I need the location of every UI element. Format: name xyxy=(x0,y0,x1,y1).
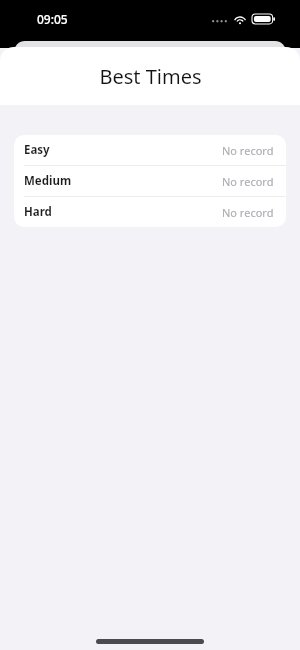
other: Battery xyxy=(252,13,276,25)
staticText: Medium xyxy=(24,173,72,189)
button[interactable]: Easy xyxy=(14,135,286,165)
staticText: Easy xyxy=(24,142,50,158)
other: Cellular signal xyxy=(212,14,227,25)
staticText: No record xyxy=(222,174,274,189)
staticText: 09:05 xyxy=(37,11,68,27)
staticText: No record xyxy=(222,205,274,220)
other: Wi-Fi xyxy=(233,14,247,25)
button[interactable]: Medium xyxy=(14,166,286,196)
staticText: Best Times xyxy=(99,63,202,90)
button[interactable]: Hard xyxy=(14,197,286,227)
staticText: Hard xyxy=(24,204,52,220)
staticText: No record xyxy=(222,143,274,158)
